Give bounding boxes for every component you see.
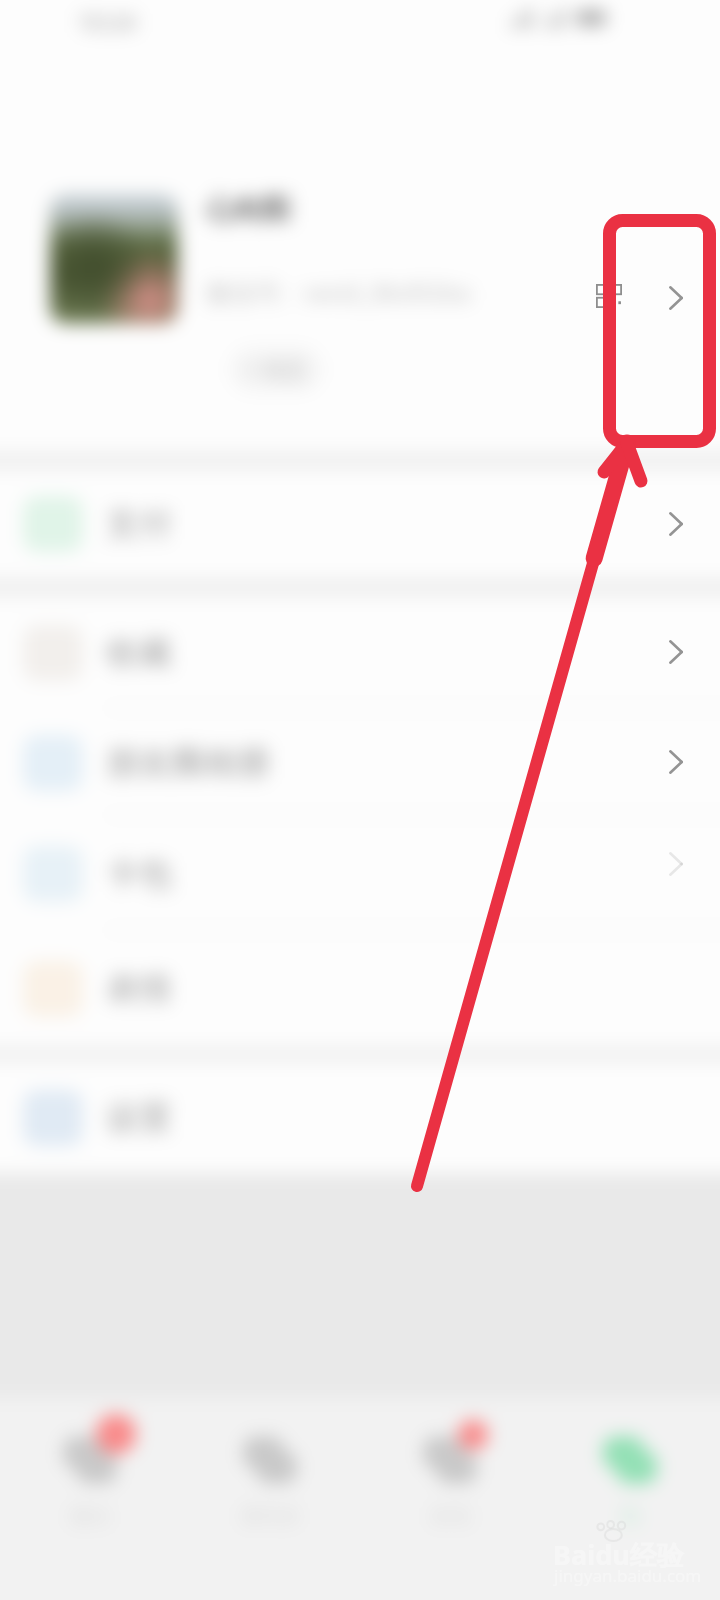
staticText: 收藏 [106, 632, 172, 674]
staticText: + 状态 [246, 355, 306, 384]
button[interactable]: 通讯录 [180, 1398, 360, 1529]
button[interactable]: 我 [540, 1398, 720, 1529]
staticText: 朋友圈相册 [106, 742, 271, 784]
staticText: 支付 [106, 503, 172, 545]
button[interactable]: My QR code [596, 284, 622, 308]
button[interactable]: 支付 [0, 470, 720, 578]
staticText: 表情 [106, 968, 172, 1010]
button[interactable]: 心向阳 [0, 0, 720, 452]
button[interactable]: + 状态 [230, 347, 322, 392]
staticText: 卡包 [106, 853, 172, 895]
staticText: 10:24 [77, 6, 136, 37]
button[interactable]: 设置 [0, 1062, 720, 1173]
button[interactable]: 微信 [0, 1398, 180, 1529]
staticText: 设置 [106, 1097, 172, 1139]
button[interactable]: 朋友圈相册 [0, 709, 720, 816]
button[interactable]: 收藏 [0, 597, 720, 709]
staticText: 微信号：wxid_8kd92ka [206, 275, 471, 309]
staticText: 心向阳 [206, 192, 290, 227]
button[interactable]: 卡包 [0, 816, 720, 931]
button[interactable]: 发现 [360, 1398, 540, 1529]
button[interactable]: 表情 [0, 931, 720, 1047]
